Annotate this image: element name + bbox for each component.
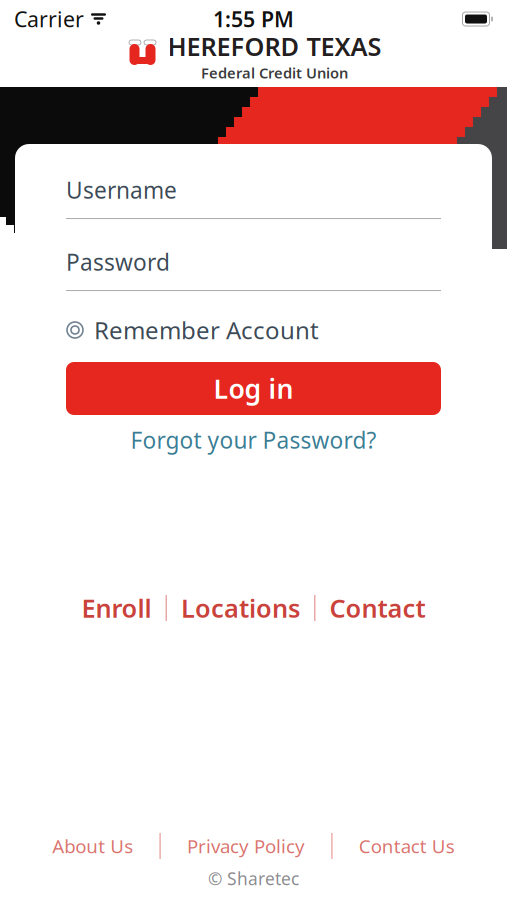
staticText: HEREFORD TEXAS (167, 29, 381, 63)
staticText: Carrier (14, 5, 84, 33)
button[interactable]: About Us (52, 831, 133, 861)
button[interactable]: Locations (167, 591, 314, 625)
staticText: Privacy Policy (187, 834, 305, 858)
staticText: 1:55 PM (213, 5, 294, 33)
staticText: Locations (181, 591, 300, 625)
button[interactable]: Remember Account (66, 314, 441, 346)
staticText: Remember Account (94, 314, 319, 346)
staticText: Log in (213, 371, 293, 406)
button[interactable]: Privacy Policy (187, 831, 305, 861)
button[interactable]: Contact (315, 591, 439, 625)
staticText: Contact Us (359, 834, 455, 858)
staticText: Password (66, 247, 170, 277)
staticText: About Us (52, 834, 133, 858)
staticText: Enroll (81, 591, 151, 625)
button[interactable]: Enroll (67, 591, 165, 625)
button[interactable]: Forgot your Password? (66, 423, 441, 457)
staticText: Username (66, 175, 177, 205)
staticText: Contact (329, 591, 425, 625)
staticText: Forgot your Password? (130, 425, 376, 455)
button[interactable]: Log in (66, 362, 441, 415)
staticText: © Sharetec (208, 867, 299, 890)
staticText: Federal Credit Union (201, 63, 348, 83)
button[interactable]: Contact Us (359, 831, 455, 861)
